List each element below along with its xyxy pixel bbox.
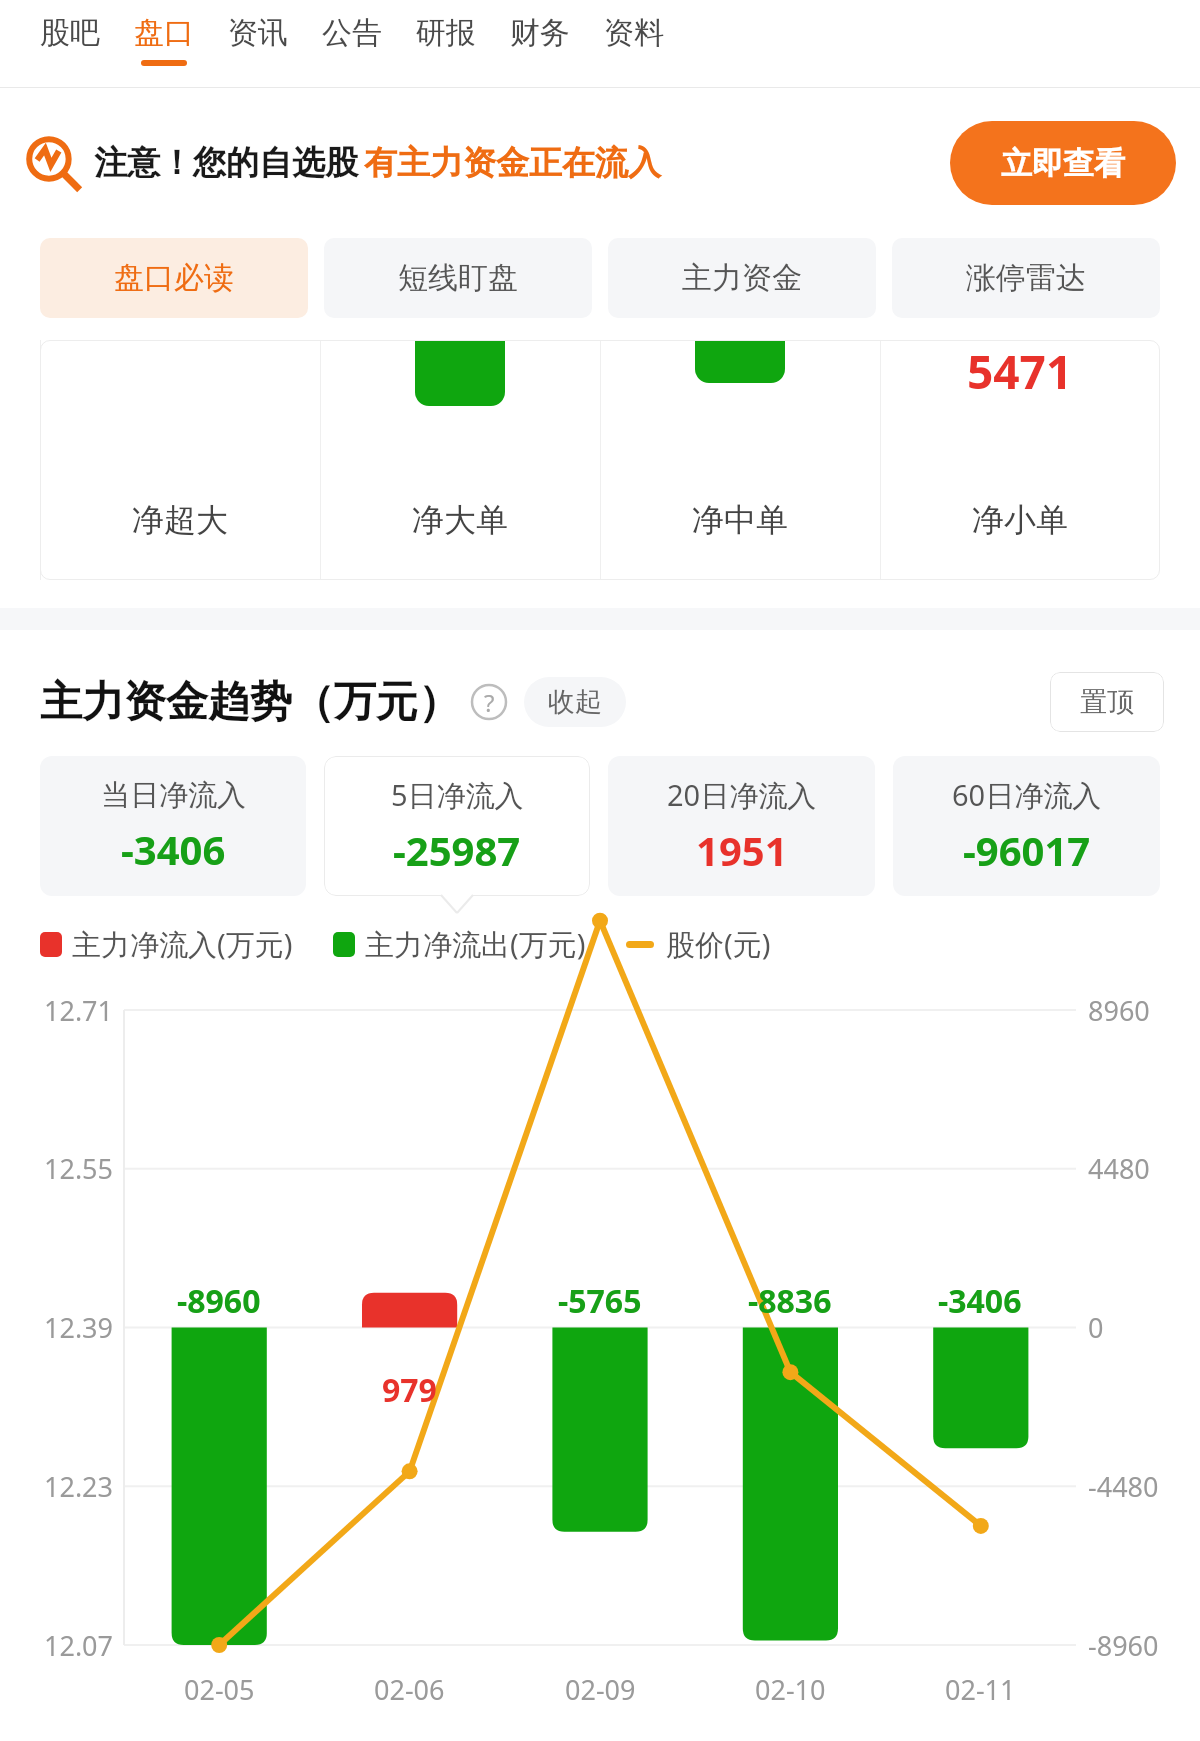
staticText: 60日净流入 bbox=[952, 775, 1102, 815]
staticText: 涨停雷达 bbox=[966, 259, 1086, 297]
button[interactable]: 短线盯盘 bbox=[324, 238, 592, 318]
staticText: 8960 bbox=[1088, 992, 1150, 1029]
staticText: 20日净流入 bbox=[667, 775, 817, 815]
staticText: 02-11 bbox=[945, 1671, 1016, 1708]
staticText: 研报 bbox=[416, 14, 476, 52]
button[interactable]: 主力资金 bbox=[608, 238, 876, 318]
staticText: 股价(元) bbox=[666, 924, 771, 964]
staticText: 当日净流入 bbox=[101, 777, 246, 814]
staticText: 12.71 bbox=[44, 992, 114, 1029]
staticText: 02-09 bbox=[565, 1671, 636, 1708]
button[interactable]: 净超大 bbox=[40, 340, 1160, 580]
staticText: 置顶 bbox=[1080, 685, 1134, 719]
staticText: 4480 bbox=[1088, 1150, 1150, 1187]
staticText: 净中单 bbox=[692, 500, 788, 540]
staticText: 主力资金 bbox=[682, 259, 802, 297]
button[interactable]: 当日净流入 bbox=[40, 756, 306, 896]
button[interactable]: 公告 bbox=[322, 0, 382, 60]
staticText: -3406 bbox=[938, 1279, 1022, 1323]
staticText: 短线盯盘 bbox=[398, 259, 518, 297]
staticText: 0 bbox=[1088, 1309, 1104, 1346]
staticText: -8960 bbox=[177, 1279, 261, 1323]
staticText: 主力净流入(万元) bbox=[72, 924, 293, 964]
button[interactable]: 资料 bbox=[604, 0, 664, 60]
staticText: 5日净流入 bbox=[391, 775, 524, 815]
staticText: 12.07 bbox=[44, 1627, 114, 1664]
staticText: 02-10 bbox=[755, 1671, 826, 1708]
button[interactable]: 60日净流入 bbox=[893, 756, 1160, 896]
staticText: 立即查看 bbox=[1001, 144, 1125, 183]
staticText: 盘口必读 bbox=[114, 259, 234, 297]
staticText: -3406 bbox=[121, 822, 226, 876]
staticText: 公告 bbox=[322, 14, 382, 52]
button[interactable]: 收起 bbox=[524, 677, 626, 727]
staticText: 收起 bbox=[548, 685, 602, 719]
staticText: 注意！您的自选股 bbox=[94, 142, 358, 184]
button[interactable]: 置顶 bbox=[1050, 672, 1164, 732]
button[interactable]: 研报 bbox=[416, 0, 476, 60]
staticText: 有主力资金正在流入 bbox=[364, 142, 661, 184]
staticText: 02-05 bbox=[184, 1671, 255, 1708]
staticText: 979 bbox=[382, 1368, 437, 1412]
button[interactable]: Help bbox=[470, 683, 508, 721]
button[interactable]: 涨停雷达 bbox=[892, 238, 1160, 318]
button[interactable]: 20日净流入 bbox=[608, 756, 875, 896]
button[interactable]: 股吧 bbox=[40, 0, 100, 60]
button[interactable]: 5日净流入 bbox=[324, 756, 590, 896]
staticText: 12.39 bbox=[44, 1309, 114, 1346]
button[interactable]: 财务 bbox=[510, 0, 570, 60]
button[interactable]: 盘口必读 bbox=[40, 238, 308, 318]
button[interactable]: 立即查看 bbox=[950, 121, 1176, 205]
staticText: -8960 bbox=[1088, 1627, 1159, 1664]
staticText: 主力资金趋势（万元） bbox=[40, 676, 460, 729]
staticText: 12.55 bbox=[44, 1150, 114, 1187]
staticText: -96017 bbox=[963, 823, 1091, 877]
staticText: -4480 bbox=[1088, 1468, 1159, 1505]
staticText: 资料 bbox=[604, 14, 664, 52]
staticText: -25987 bbox=[393, 823, 521, 877]
staticText: 资讯 bbox=[228, 14, 288, 52]
button[interactable]: 资讯 bbox=[228, 0, 288, 60]
staticText: 股吧 bbox=[40, 14, 100, 52]
staticText: 财务 bbox=[510, 14, 570, 52]
button[interactable]: 盘口 bbox=[134, 0, 194, 66]
staticText: 12.23 bbox=[44, 1468, 114, 1505]
staticText: 主力净流出(万元) bbox=[365, 924, 586, 964]
staticText: 盘口 bbox=[134, 14, 194, 52]
staticText: 净小单 bbox=[972, 500, 1068, 540]
staticText: 1951 bbox=[696, 823, 788, 877]
staticText: 净超大 bbox=[132, 500, 228, 540]
staticText: ? bbox=[484, 686, 495, 719]
staticText: 净大单 bbox=[412, 500, 508, 540]
staticText: -8836 bbox=[748, 1279, 832, 1323]
staticText: 02-06 bbox=[374, 1671, 445, 1708]
staticText: 5471 bbox=[967, 340, 1073, 403]
staticText: -5765 bbox=[558, 1279, 642, 1323]
